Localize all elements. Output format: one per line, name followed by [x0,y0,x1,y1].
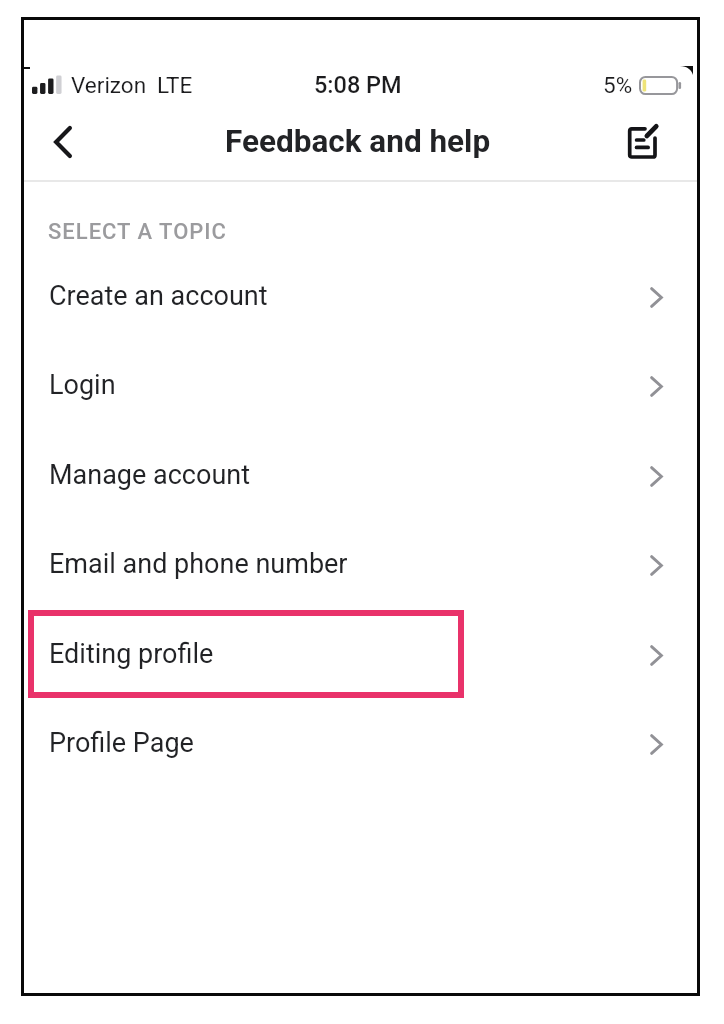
staticText: Login [49,369,116,401]
button[interactable]: Login [21,340,700,429]
staticText: 5% [603,72,633,98]
staticText: Email and phone number [49,548,348,580]
staticText: Verizon [71,72,147,98]
button[interactable]: Editing profile [21,609,700,698]
staticText: Manage account [49,459,251,491]
staticText: 5:08 PM [314,71,402,99]
staticText: Feedback and help [225,123,491,160]
button[interactable]: Email and phone number [21,519,700,608]
staticText: LTE [157,72,193,98]
staticText: SELECT A TOPIC [48,219,227,245]
staticText: Editing profile [49,638,214,670]
button[interactable]: Write feedback [616,116,668,168]
button[interactable]: Profile Page [21,698,700,787]
staticText: Profile Page [49,727,194,759]
button[interactable]: Back [36,115,90,169]
staticText: Create an account [49,280,268,312]
button[interactable]: Create an account [21,251,700,340]
button[interactable]: Manage account [21,430,700,519]
